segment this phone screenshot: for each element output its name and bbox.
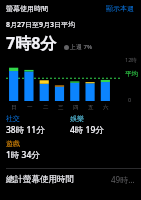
staticText: 38時 11分 — [6, 124, 45, 136]
staticText: 總計螢幕使用時間 — [6, 174, 74, 185]
staticText: 8月27日至9月3日平均 — [6, 20, 76, 30]
staticText: 49時… — [111, 174, 135, 185]
staticText: 12時 — [125, 56, 137, 64]
button[interactable]: 遊戲 — [6, 139, 70, 161]
button[interactable]: 社交 — [6, 114, 70, 136]
staticText: 二 — [43, 104, 49, 111]
staticText: 一 — [27, 104, 33, 111]
other: Decrease — [64, 45, 69, 50]
button[interactable]: 總計螢幕使用時間 — [0, 169, 141, 189]
button[interactable]: 顯示本週 — [105, 3, 135, 14]
staticText: 顯示本週 — [106, 4, 134, 13]
staticText: 四 — [73, 104, 79, 111]
staticText: 螢幕使用時間 — [6, 4, 48, 13]
staticText: 上週 7% — [70, 43, 93, 51]
staticText: 六 — [103, 104, 109, 111]
button[interactable]: 娛樂 — [70, 114, 135, 136]
staticText: 娛樂 — [70, 114, 84, 123]
staticText: 1時 34分 — [6, 149, 40, 161]
staticText: 平均 — [125, 70, 138, 78]
staticText: 社交 — [6, 114, 20, 123]
staticText: 日 — [11, 104, 17, 111]
staticText: 三 — [58, 104, 64, 111]
staticText: 7時8分 — [6, 32, 57, 54]
staticText: 五 — [88, 104, 94, 111]
staticText: 遊戲 — [6, 139, 20, 148]
staticText: 4時 19分 — [70, 124, 104, 136]
staticText: 0 — [128, 96, 132, 103]
